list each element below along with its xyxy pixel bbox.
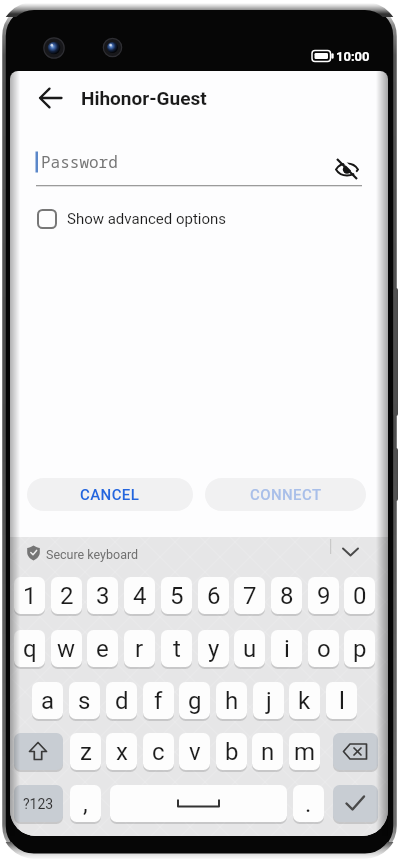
staticText: q (23, 635, 37, 663)
button[interactable]: ?123 (14, 785, 63, 822)
button[interactable]: i (271, 630, 302, 667)
button[interactable]: t (161, 630, 192, 667)
button[interactable]: h (216, 682, 247, 719)
staticText: 6 (207, 582, 221, 610)
staticText: Hihonor-Guest (81, 87, 207, 109)
button[interactable]: a (32, 682, 63, 719)
button[interactable]: 7 (234, 577, 265, 614)
staticText: 7 (243, 582, 257, 610)
staticText: Password (41, 151, 118, 173)
button[interactable]: u (234, 630, 265, 667)
staticText: v (189, 738, 201, 766)
button[interactable]: l (326, 682, 357, 719)
button[interactable]: 4 (124, 577, 155, 614)
button[interactable]: c (143, 733, 174, 770)
button[interactable] (30, 202, 270, 236)
staticText: h (225, 687, 239, 715)
button[interactable] (333, 785, 378, 822)
button[interactable] (330, 152, 366, 188)
button[interactable]: 1 (14, 577, 45, 614)
button[interactable]: 3 (87, 577, 118, 614)
button[interactable]: CANCEL (27, 478, 193, 511)
staticText: 1 (23, 582, 37, 610)
staticText: x (116, 738, 128, 766)
button[interactable] (336, 540, 366, 564)
button[interactable]: 5 (161, 577, 192, 614)
button[interactable]: x (106, 733, 137, 770)
staticText: 3 (96, 582, 110, 610)
button[interactable]: f (143, 682, 174, 719)
staticText: b (225, 738, 239, 766)
staticText: CANCEL (80, 486, 140, 504)
staticText: o (317, 635, 331, 663)
staticText: g (188, 687, 202, 715)
staticText: , (83, 790, 88, 818)
button[interactable]: s (69, 682, 100, 719)
button[interactable]: q (14, 630, 45, 667)
button[interactable]: w (51, 630, 82, 667)
button[interactable]: 6 (198, 577, 229, 614)
staticText: Show advanced options (67, 210, 227, 228)
staticText: k (298, 687, 311, 715)
button[interactable]: n (252, 733, 283, 770)
staticText: l (339, 687, 345, 715)
button[interactable]: v (179, 733, 210, 770)
staticText: w (57, 635, 76, 663)
staticText: i (284, 635, 290, 663)
staticText: 8 (280, 582, 294, 610)
button[interactable]: r (124, 630, 155, 667)
button[interactable] (30, 78, 70, 118)
button[interactable]: 0 (344, 577, 375, 614)
button[interactable]: k (289, 682, 320, 719)
staticText: e (96, 635, 109, 663)
button[interactable]: CONNECT (205, 478, 366, 511)
staticText: a (41, 687, 55, 715)
button[interactable]: o (308, 630, 339, 667)
staticText: f (154, 687, 163, 715)
staticText: Secure keyboard (46, 547, 139, 562)
button[interactable]: d (106, 682, 137, 719)
staticText: j (266, 687, 272, 715)
staticText: ?123 (23, 796, 54, 812)
staticText: z (80, 738, 92, 766)
staticText: 4 (133, 582, 147, 610)
staticText: 0 (353, 582, 367, 610)
staticText: . (305, 790, 312, 818)
staticText: c (152, 738, 165, 766)
staticText: m (294, 738, 316, 766)
button[interactable]: j (253, 682, 284, 719)
staticText: y (208, 635, 220, 663)
button[interactable]: m (289, 733, 320, 770)
button[interactable]: , (70, 785, 101, 822)
staticText: d (115, 687, 129, 715)
staticText: p (353, 635, 367, 663)
staticText: s (78, 687, 91, 715)
button[interactable]: 8 (271, 577, 302, 614)
button[interactable]: p (344, 630, 375, 667)
button[interactable]: b (216, 733, 247, 770)
staticText: CONNECT (250, 486, 322, 504)
staticText: n (261, 738, 275, 766)
button[interactable]: e (87, 630, 118, 667)
staticText: 5 (170, 582, 184, 610)
staticText: 2 (60, 582, 74, 610)
staticText: 9 (317, 582, 331, 610)
button[interactable]: 9 (308, 577, 339, 614)
staticText: 10:00 (336, 49, 370, 64)
staticText: u (243, 635, 257, 663)
button[interactable]: 2 (51, 577, 82, 614)
button[interactable] (333, 733, 378, 770)
button[interactable]: z (70, 733, 101, 770)
button[interactable] (14, 733, 63, 770)
staticText: r (135, 635, 144, 663)
button[interactable]: g (179, 682, 210, 719)
button[interactable]: y (198, 630, 229, 667)
button[interactable] (110, 785, 287, 822)
button[interactable]: . (293, 785, 324, 822)
button[interactable] (27, 145, 327, 185)
staticText: t (173, 635, 181, 663)
